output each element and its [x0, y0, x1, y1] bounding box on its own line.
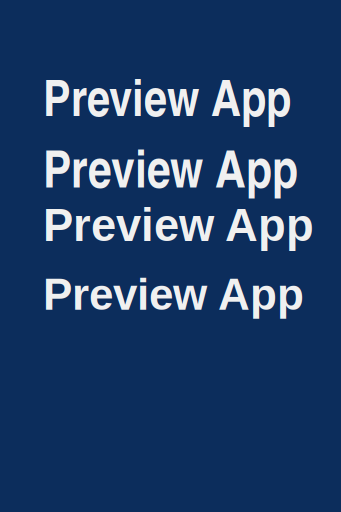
staticText: Preview App	[43, 200, 314, 251]
staticText: Preview App	[43, 270, 304, 319]
staticText: Preview App	[43, 60, 291, 131]
staticText: Preview App	[43, 130, 298, 203]
